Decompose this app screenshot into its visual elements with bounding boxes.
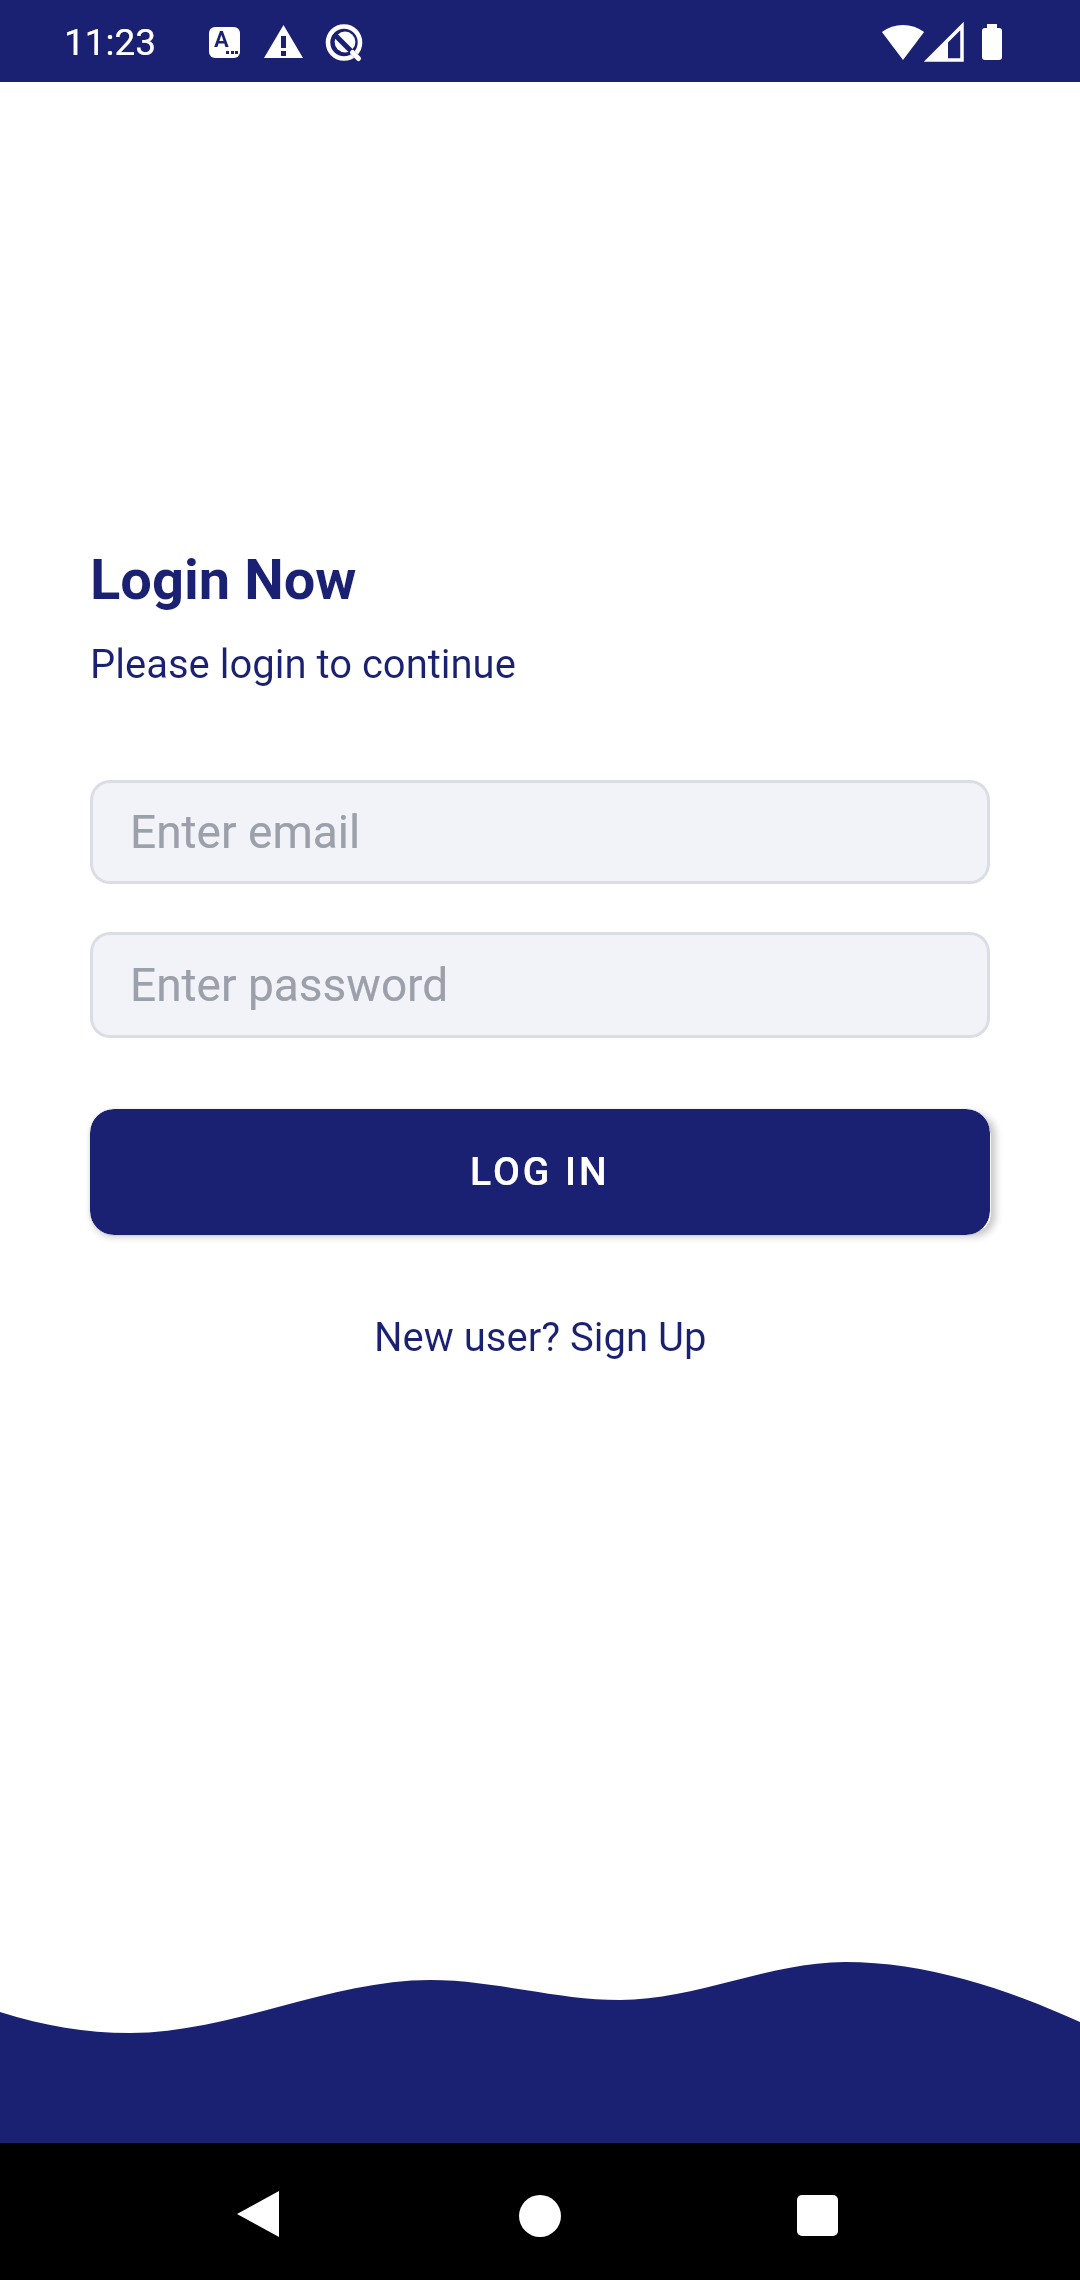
button[interactable] bbox=[499, 2175, 581, 2257]
button[interactable]: Enter password bbox=[90, 932, 990, 1038]
button[interactable]: LOG IN bbox=[90, 1109, 990, 1235]
button[interactable] bbox=[776, 2174, 858, 2256]
button[interactable]: New user? Sign Up bbox=[374, 1314, 707, 1361]
staticText: 11:23 bbox=[64, 21, 157, 64]
staticText: New user? Sign Up bbox=[374, 1314, 707, 1361]
staticText: Login Now bbox=[90, 547, 357, 613]
staticText: Enter password bbox=[130, 958, 449, 1012]
staticText: Enter email bbox=[130, 805, 361, 859]
button[interactable] bbox=[217, 2173, 299, 2255]
button[interactable]: Enter email bbox=[90, 780, 990, 884]
staticText: LOG IN bbox=[470, 1149, 610, 1195]
staticText: A bbox=[214, 27, 229, 53]
staticText: Please login to continue bbox=[90, 641, 516, 688]
